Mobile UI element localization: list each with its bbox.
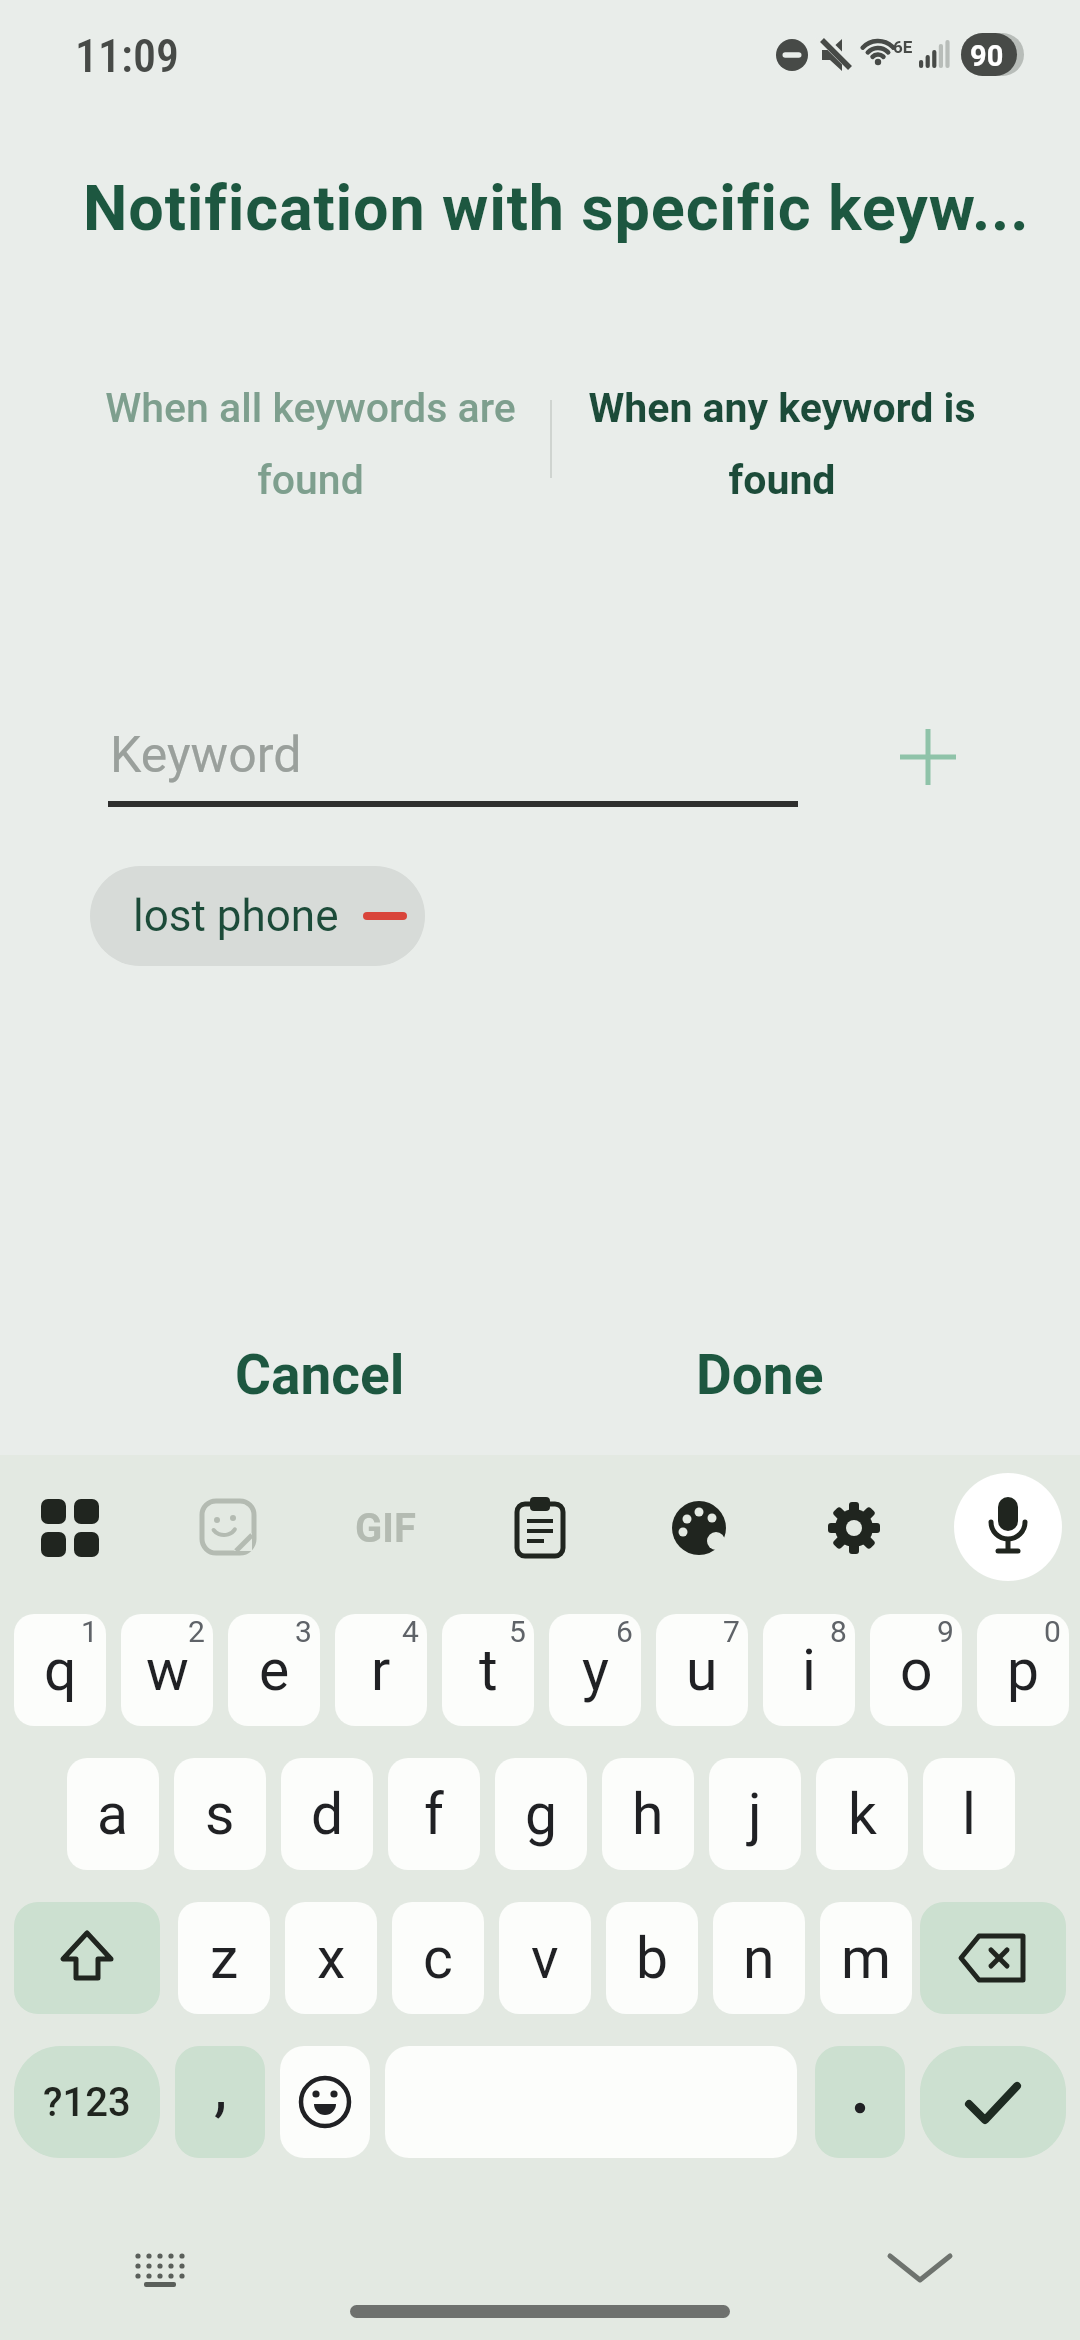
staticText: d [311, 1781, 344, 1848]
button[interactable] [898, 727, 958, 787]
staticText: p [1007, 1637, 1040, 1704]
staticText: lost phone [133, 890, 339, 942]
staticText: u [686, 1637, 718, 1704]
button[interactable]: u [656, 1614, 748, 1726]
staticText: 1 [81, 1614, 98, 1649]
button[interactable]: f [388, 1758, 480, 1870]
staticText: Notification with specific keyw... [83, 172, 1030, 246]
staticText: c [423, 1925, 453, 1992]
staticText: 9 [937, 1614, 954, 1649]
staticText: Done [696, 1343, 824, 1407]
staticText: 90 [970, 39, 1004, 73]
button[interactable] [954, 1473, 1062, 1581]
button[interactable]: GIF [340, 1500, 430, 1556]
button[interactable] [280, 2046, 370, 2158]
button[interactable]: lost phone [90, 866, 425, 966]
button[interactable]: Cancel [130, 1335, 510, 1415]
staticText: z [210, 1925, 239, 1992]
staticText: ?123 [43, 2079, 131, 2126]
button[interactable]: x [285, 1902, 377, 2014]
staticText: m [841, 1925, 891, 1992]
staticText: 6 [616, 1614, 633, 1649]
button[interactable]: s [174, 1758, 266, 1870]
button[interactable] [514, 1497, 566, 1559]
button[interactable]: h [602, 1758, 694, 1870]
staticText: h [632, 1781, 664, 1848]
staticText: o [900, 1637, 933, 1704]
button[interactable] [920, 2046, 1066, 2158]
staticText: 0 [1044, 1614, 1061, 1649]
staticText: k [848, 1781, 877, 1848]
staticText: w [146, 1637, 189, 1704]
button[interactable]: l [923, 1758, 1015, 1870]
staticText: e [259, 1637, 290, 1704]
button[interactable]: When all keywords are found [65, 372, 555, 516]
button[interactable] [826, 1500, 882, 1556]
staticText: t [479, 1637, 498, 1704]
button[interactable]: p [977, 1614, 1069, 1726]
button[interactable] [41, 1499, 99, 1557]
staticText: When all keywords are found [105, 384, 516, 504]
button[interactable] [14, 1902, 160, 2014]
staticText: Keyword [110, 726, 302, 785]
button[interactable]: c [392, 1902, 484, 2014]
button[interactable] [124, 2244, 196, 2292]
staticText: 2 [188, 1614, 205, 1649]
staticText: GIF [355, 1505, 416, 1552]
button[interactable]: y [549, 1614, 641, 1726]
staticText: j [748, 1781, 762, 1848]
staticText: i [802, 1637, 816, 1704]
staticText: 4 [402, 1614, 419, 1649]
button[interactable]: e [228, 1614, 320, 1726]
button[interactable]: m [820, 1902, 912, 2014]
button[interactable]: t [442, 1614, 534, 1726]
staticText: 11:09 [75, 29, 180, 83]
button[interactable]: ?123 [14, 2046, 160, 2158]
staticText: n [743, 1925, 775, 1992]
button[interactable]: w [121, 1614, 213, 1726]
staticText: v [531, 1925, 559, 1992]
staticText: q [44, 1637, 77, 1704]
button[interactable]: v [499, 1902, 591, 2014]
button[interactable]: Done [570, 1335, 950, 1415]
button[interactable] [815, 2046, 905, 2158]
button[interactable] [884, 2246, 956, 2290]
staticText: , [214, 2048, 227, 2125]
staticText: When any keyword is found [588, 384, 976, 504]
staticText: f [424, 1781, 444, 1848]
button[interactable]: n [713, 1902, 805, 2014]
staticText: 5 [509, 1614, 526, 1649]
staticText: x [317, 1925, 346, 1992]
staticText: 8 [830, 1614, 847, 1649]
staticText: 6E [893, 37, 913, 57]
button[interactable]: d [281, 1758, 373, 1870]
staticText: a [97, 1781, 129, 1848]
button[interactable] [920, 1902, 1066, 2014]
staticText: b [636, 1925, 669, 1992]
staticText: 3 [295, 1614, 312, 1649]
staticText: y [582, 1637, 609, 1704]
button[interactable]: b [606, 1902, 698, 2014]
staticText: l [962, 1781, 976, 1848]
button[interactable]: q [14, 1614, 106, 1726]
button[interactable]: , [175, 2046, 265, 2158]
button[interactable]: k [816, 1758, 908, 1870]
staticText: s [205, 1781, 235, 1848]
button[interactable]: i [763, 1614, 855, 1726]
button[interactable] [200, 1499, 256, 1555]
button[interactable]: r [335, 1614, 427, 1726]
button[interactable]: When any keyword is found [552, 372, 1012, 516]
staticText: g [525, 1781, 558, 1848]
button[interactable] [670, 1499, 728, 1557]
button[interactable]: j [709, 1758, 801, 1870]
button[interactable]: g [495, 1758, 587, 1870]
button[interactable]: a [67, 1758, 159, 1870]
staticText: r [371, 1637, 391, 1704]
staticText: 7 [723, 1614, 740, 1649]
button[interactable]: o [870, 1614, 962, 1726]
staticText: Cancel [235, 1343, 405, 1407]
button[interactable]: z [178, 1902, 270, 2014]
